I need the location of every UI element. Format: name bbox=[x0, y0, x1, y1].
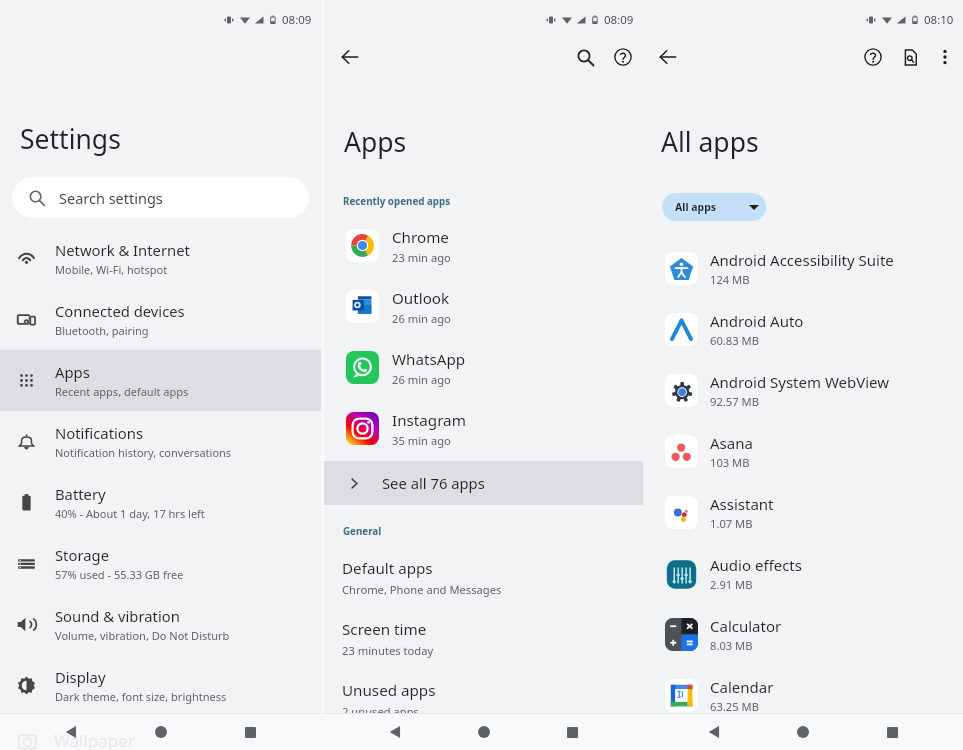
button[interactable]: Home bbox=[785, 714, 821, 750]
button[interactable]: Home bbox=[466, 714, 502, 750]
staticText: Sound & vibration bbox=[55, 606, 180, 626]
button[interactable]: Help bbox=[606, 40, 640, 74]
button[interactable]: Search bbox=[568, 40, 602, 74]
button[interactable]: App info bbox=[893, 40, 927, 74]
button[interactable]: Apps bbox=[0, 350, 321, 411]
staticText: 1.07 MB bbox=[710, 516, 753, 531]
staticText: 2 unused apps bbox=[342, 704, 419, 719]
staticText: 40% - About 1 day, 17 hrs left bbox=[55, 506, 205, 521]
button[interactable]: Navigate up bbox=[650, 39, 686, 75]
staticText: 23 min ago bbox=[392, 250, 451, 265]
button[interactable]: Calendar bbox=[643, 665, 963, 726]
staticText: Recently opened apps bbox=[343, 195, 451, 208]
staticText: Chrome, Phone and Messages bbox=[342, 582, 502, 597]
staticText: 23 minutes today bbox=[342, 643, 434, 658]
staticText: 08:09 bbox=[604, 12, 634, 28]
staticText: Settings bbox=[20, 121, 121, 157]
staticText: 08:10 bbox=[924, 12, 954, 28]
staticText: 124 MB bbox=[710, 272, 750, 287]
staticText: Volume, vibration, Do Not Disturb bbox=[55, 628, 230, 643]
button[interactable]: More options bbox=[928, 40, 962, 74]
staticText: 08:09 bbox=[282, 12, 312, 28]
button[interactable]: Default apps bbox=[324, 547, 643, 608]
button[interactable]: Android System WebView bbox=[643, 360, 963, 421]
button[interactable]: Instagram bbox=[324, 398, 643, 459]
button[interactable]: Network & Internet bbox=[0, 228, 321, 289]
button[interactable]: Unused apps bbox=[324, 669, 643, 730]
staticText: Instagram bbox=[392, 410, 466, 431]
staticText: Notifications bbox=[55, 423, 144, 443]
staticText: 60.83 MB bbox=[710, 333, 759, 348]
button[interactable]: Battery bbox=[0, 472, 321, 533]
staticText: Connected devices bbox=[55, 301, 185, 321]
button[interactable]: Recent apps bbox=[874, 714, 910, 750]
button[interactable]: All apps bbox=[662, 193, 766, 221]
staticText: Display bbox=[55, 667, 106, 687]
staticText: Android Accessibility Suite bbox=[710, 250, 894, 270]
button[interactable]: Home bbox=[143, 714, 179, 750]
staticText: Wallpaper bbox=[54, 729, 135, 750]
staticText: Outlook bbox=[392, 288, 450, 309]
button[interactable]: Outlook bbox=[324, 276, 643, 337]
button[interactable]: Assistant bbox=[643, 482, 963, 543]
staticText: WhatsApp bbox=[392, 349, 466, 370]
button[interactable]: Screen time bbox=[324, 608, 643, 669]
staticText: 63.25 MB bbox=[710, 699, 759, 714]
staticText: Recent apps, default apps bbox=[55, 384, 189, 399]
button[interactable]: Chrome bbox=[324, 215, 643, 276]
button[interactable]: Back bbox=[53, 714, 89, 750]
staticText: Assistant bbox=[710, 494, 774, 514]
staticText: 92.57 MB bbox=[710, 394, 759, 409]
staticText: Dark theme, font size, brightness bbox=[55, 689, 227, 704]
button[interactable]: See all 76 apps bbox=[324, 461, 643, 505]
staticText: 26 min ago bbox=[392, 372, 451, 387]
button[interactable]: Display bbox=[0, 655, 321, 716]
button[interactable]: Help bbox=[856, 40, 890, 74]
staticText: 57% used - 55.33 GB free bbox=[55, 567, 184, 582]
staticText: Mobile, Wi-Fi, hotspot bbox=[55, 262, 168, 277]
staticText: Default apps bbox=[342, 558, 433, 579]
button[interactable]: Sound & vibration bbox=[0, 594, 321, 655]
staticText: All apps bbox=[661, 124, 759, 160]
staticText: 26 min ago bbox=[392, 311, 451, 326]
staticText: See all 76 apps bbox=[382, 473, 485, 493]
staticText: Asana bbox=[710, 433, 753, 453]
staticText: Calendar bbox=[710, 677, 774, 697]
staticText: All apps bbox=[675, 200, 717, 214]
staticText: 35 min ago bbox=[392, 433, 451, 448]
staticText: Android System WebView bbox=[710, 372, 890, 392]
staticText: Android Auto bbox=[710, 311, 804, 331]
staticText: Search settings bbox=[59, 188, 163, 208]
button[interactable]: Asana bbox=[643, 421, 963, 482]
button[interactable]: Android Accessibility Suite bbox=[643, 238, 963, 299]
staticText: Calculator bbox=[710, 616, 782, 636]
staticText: Screen time bbox=[342, 619, 427, 640]
staticText: Bluetooth, pairing bbox=[55, 323, 149, 338]
staticText: Chrome bbox=[392, 227, 449, 248]
button[interactable]: Search settings bbox=[12, 177, 309, 218]
staticText: Storage bbox=[55, 545, 109, 565]
staticText: Audio effects bbox=[710, 555, 802, 575]
button[interactable]: Navigate up bbox=[332, 39, 368, 75]
button[interactable]: Back bbox=[696, 714, 732, 750]
staticText: Network & Internet bbox=[55, 240, 190, 260]
button[interactable]: Calculator bbox=[643, 604, 963, 665]
staticText: Unused apps bbox=[342, 680, 436, 701]
button[interactable]: Notifications bbox=[0, 411, 321, 472]
button[interactable]: Android Auto bbox=[643, 299, 963, 360]
staticText: Notification history, conversations bbox=[55, 445, 232, 460]
staticText: 103 MB bbox=[710, 455, 750, 470]
button[interactable]: Recent apps bbox=[232, 714, 268, 750]
staticText: General bbox=[343, 525, 382, 538]
button[interactable]: Audio effects bbox=[643, 543, 963, 604]
button[interactable]: WhatsApp bbox=[324, 337, 643, 398]
button[interactable]: Back bbox=[377, 714, 413, 750]
button[interactable]: Storage bbox=[0, 533, 321, 594]
staticText: Battery bbox=[55, 484, 106, 504]
button[interactable]: Recent apps bbox=[554, 714, 590, 750]
button[interactable]: Connected devices bbox=[0, 289, 321, 350]
staticText: 8.03 MB bbox=[710, 638, 753, 653]
staticText: Apps bbox=[344, 124, 407, 160]
staticText: 2.91 MB bbox=[710, 577, 753, 592]
staticText: Apps bbox=[55, 362, 90, 382]
